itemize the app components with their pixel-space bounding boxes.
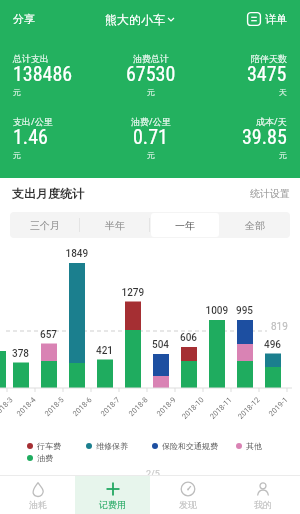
staticText: 熊大的小车 bbox=[105, 12, 165, 27]
staticText: 保险和交通规费 bbox=[162, 441, 218, 451]
staticText: 支出月度统计 bbox=[12, 186, 84, 201]
staticText: 天 bbox=[279, 87, 287, 97]
staticText: 元 bbox=[279, 150, 287, 160]
staticText: 39.85 bbox=[242, 125, 287, 148]
staticText: 发现 bbox=[179, 499, 197, 510]
staticText: 2/5 bbox=[146, 469, 160, 480]
staticText: 67530 bbox=[126, 62, 176, 85]
staticText: 1.46 bbox=[13, 125, 48, 148]
staticText: 其他 bbox=[246, 441, 262, 451]
staticText: 一年 bbox=[175, 219, 195, 232]
staticText: 维修保养 bbox=[96, 441, 128, 451]
staticText: 半年 bbox=[105, 219, 125, 232]
staticText: 支出/公里 bbox=[13, 116, 53, 127]
staticText: 油费 bbox=[37, 453, 53, 463]
staticText: 油费总计 bbox=[133, 53, 169, 64]
staticText: 138486 bbox=[13, 62, 73, 85]
staticText: 三个月 bbox=[30, 219, 60, 232]
staticText: 3475 bbox=[247, 62, 287, 85]
staticText: 我的 bbox=[254, 499, 272, 510]
staticText: 成本/天 bbox=[256, 116, 287, 127]
staticText: 元 bbox=[147, 87, 155, 97]
staticText: 陪伴天数 bbox=[251, 53, 287, 64]
staticText: 油费/公里 bbox=[131, 116, 171, 127]
staticText: 0.71 bbox=[133, 125, 168, 148]
staticText: 行车费 bbox=[37, 441, 61, 451]
staticText: 元 bbox=[147, 150, 155, 160]
staticText: 统计设置 bbox=[250, 187, 290, 200]
staticText: 油耗 bbox=[29, 499, 47, 510]
staticText: 全部 bbox=[245, 219, 265, 232]
staticText: 元 bbox=[13, 150, 21, 160]
staticText: 元 bbox=[13, 87, 21, 97]
staticText: 记费用 bbox=[99, 499, 126, 510]
staticText: 详单 bbox=[265, 12, 287, 26]
staticText: 分享 bbox=[13, 12, 35, 26]
staticText: 总计支出 bbox=[13, 53, 49, 64]
